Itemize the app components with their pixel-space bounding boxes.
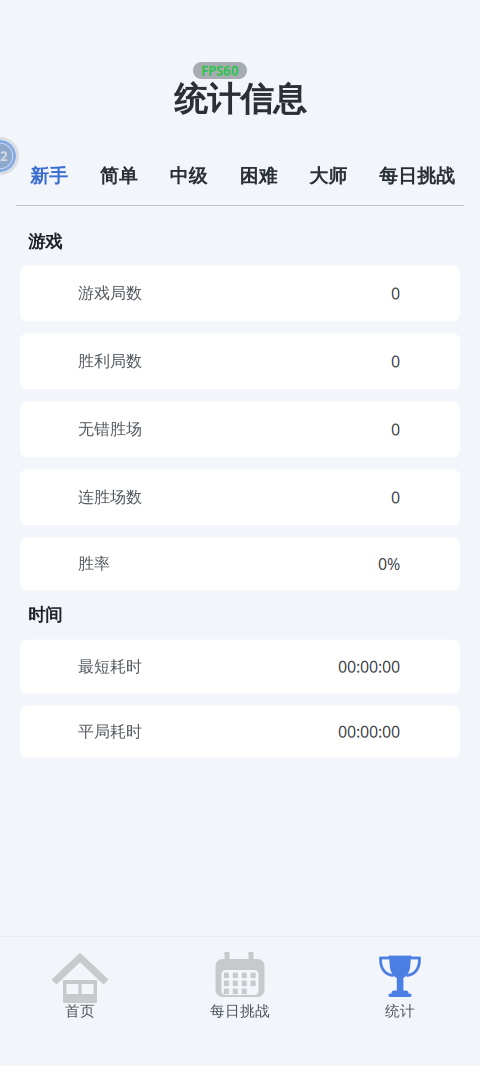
staticText: 连胜场数 bbox=[78, 487, 142, 507]
staticText: 最短耗时 bbox=[78, 657, 142, 676]
staticText: 游戏局数 bbox=[78, 283, 142, 303]
staticText: 0% bbox=[378, 553, 400, 574]
staticText: 无错胜场 bbox=[78, 419, 142, 439]
button[interactable]: 简单 bbox=[100, 164, 138, 187]
button[interactable]: 新手 bbox=[30, 164, 68, 187]
staticText: 0 bbox=[391, 283, 400, 304]
staticText: 22 bbox=[0, 147, 8, 165]
staticText: 首页 bbox=[65, 1002, 95, 1020]
button[interactable]: 每日挑战 bbox=[160, 930, 320, 1066]
button[interactable]: 困难 bbox=[239, 164, 277, 187]
staticText: 0 bbox=[391, 351, 400, 372]
staticText: 困难 bbox=[239, 164, 277, 187]
button[interactable]: 无错胜场 bbox=[20, 401, 460, 457]
staticText: 平局耗时 bbox=[78, 722, 142, 741]
staticText: 统计 bbox=[385, 1002, 415, 1020]
staticText: 简单 bbox=[100, 164, 138, 187]
button[interactable]: 胜率 bbox=[20, 537, 460, 590]
button[interactable]: 游戏局数 bbox=[20, 265, 460, 321]
button[interactable]: 胜利局数 bbox=[20, 333, 460, 389]
staticText: 00:00:00 bbox=[338, 656, 400, 677]
staticText: 大师 bbox=[309, 164, 347, 187]
button[interactable]: 每日挑战 bbox=[379, 164, 455, 187]
staticText: 每日挑战 bbox=[210, 1002, 270, 1020]
staticText: 0 bbox=[391, 419, 400, 440]
staticText: 胜率 bbox=[78, 554, 110, 574]
staticText: 时间 bbox=[28, 604, 62, 626]
button[interactable]: Performance gauge bbox=[0, 137, 19, 175]
staticText: 中级 bbox=[170, 164, 208, 187]
button[interactable]: 中级 bbox=[170, 164, 208, 187]
staticText: 新手 bbox=[30, 164, 68, 187]
button[interactable]: 统计 bbox=[320, 930, 480, 1066]
staticText: 游戏 bbox=[28, 231, 62, 252]
staticText: 统计信息 bbox=[174, 79, 306, 120]
button[interactable]: 首页 bbox=[0, 930, 160, 1066]
staticText: 每日挑战 bbox=[379, 164, 455, 187]
staticText: 00:00:00 bbox=[338, 721, 400, 742]
staticText: FPS60 bbox=[201, 62, 239, 79]
button[interactable]: 大师 bbox=[309, 164, 347, 187]
button[interactable]: 最短耗时 bbox=[20, 640, 460, 694]
button[interactable]: 平局耗时 bbox=[20, 706, 460, 758]
button[interactable]: 连胜场数 bbox=[20, 469, 460, 525]
staticText: 胜利局数 bbox=[78, 351, 142, 371]
staticText: 0 bbox=[391, 487, 400, 508]
